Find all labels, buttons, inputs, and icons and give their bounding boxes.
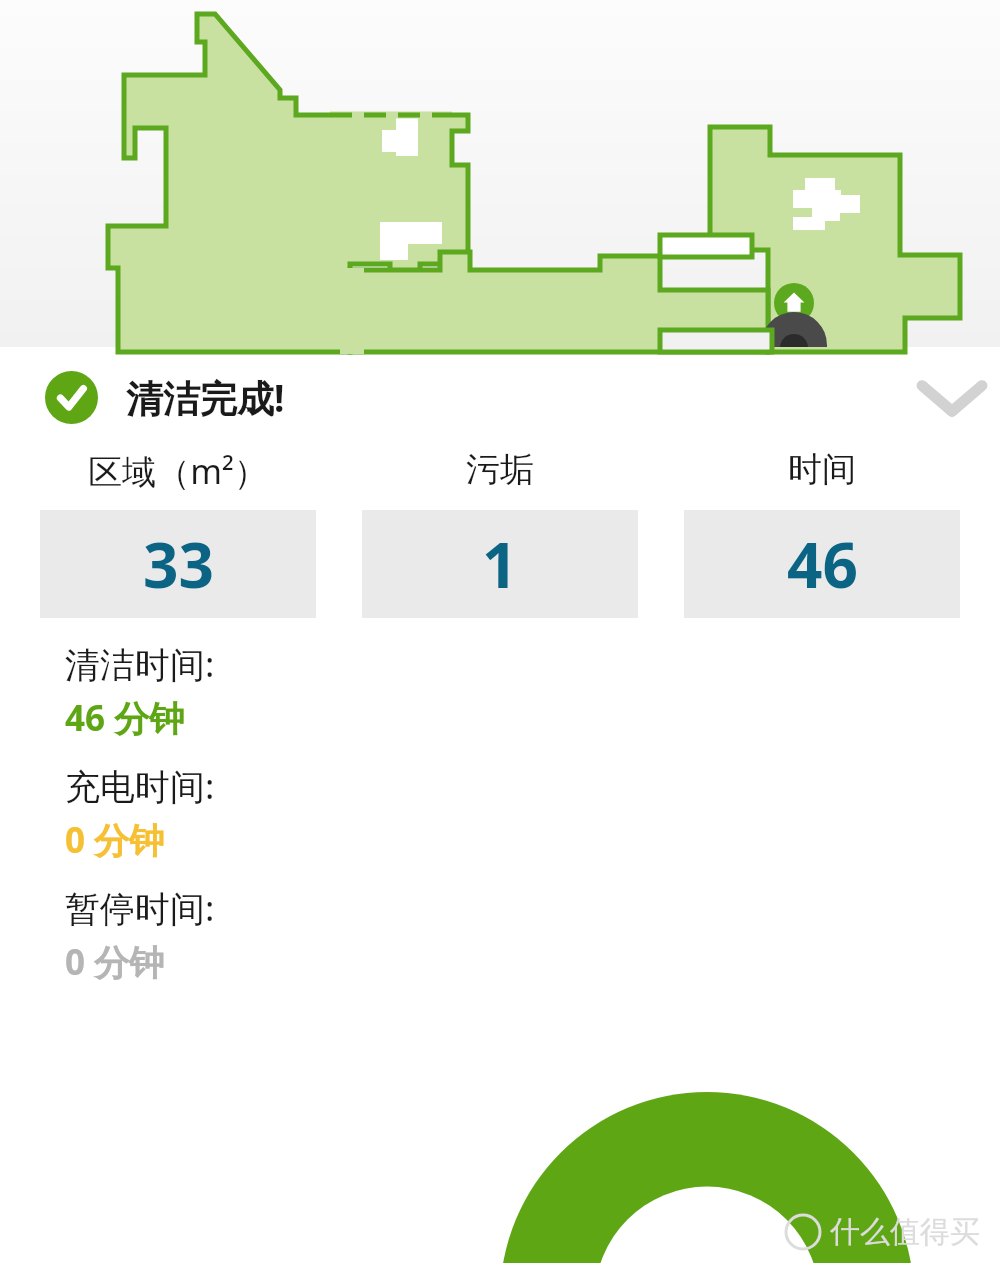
staticText: 污垢 [362,448,638,491]
staticText: 清洁完成! [126,372,285,423]
button[interactable]: 33 [40,510,316,618]
button[interactable]: 1 [362,510,638,618]
button[interactable]: 46 [684,510,960,618]
staticText: 46 [787,522,858,606]
button[interactable]: Cleaning map [0,0,1000,347]
staticText: 0 分钟 [65,938,165,986]
staticText: 区域（m²） [40,448,316,494]
staticText: 33 [143,522,214,606]
staticText: 什么值得买 [830,1213,980,1251]
button[interactable]: Collapse [904,350,1000,446]
staticText: 时间 [684,448,960,491]
staticText: 0 分钟 [65,816,165,864]
staticText: 充电时间: [65,762,215,810]
staticText: 46 分钟 [65,694,185,742]
staticText: 清洁时间: [65,640,215,688]
staticText: 暂停时间: [65,884,215,932]
staticText: 1 [482,522,518,606]
